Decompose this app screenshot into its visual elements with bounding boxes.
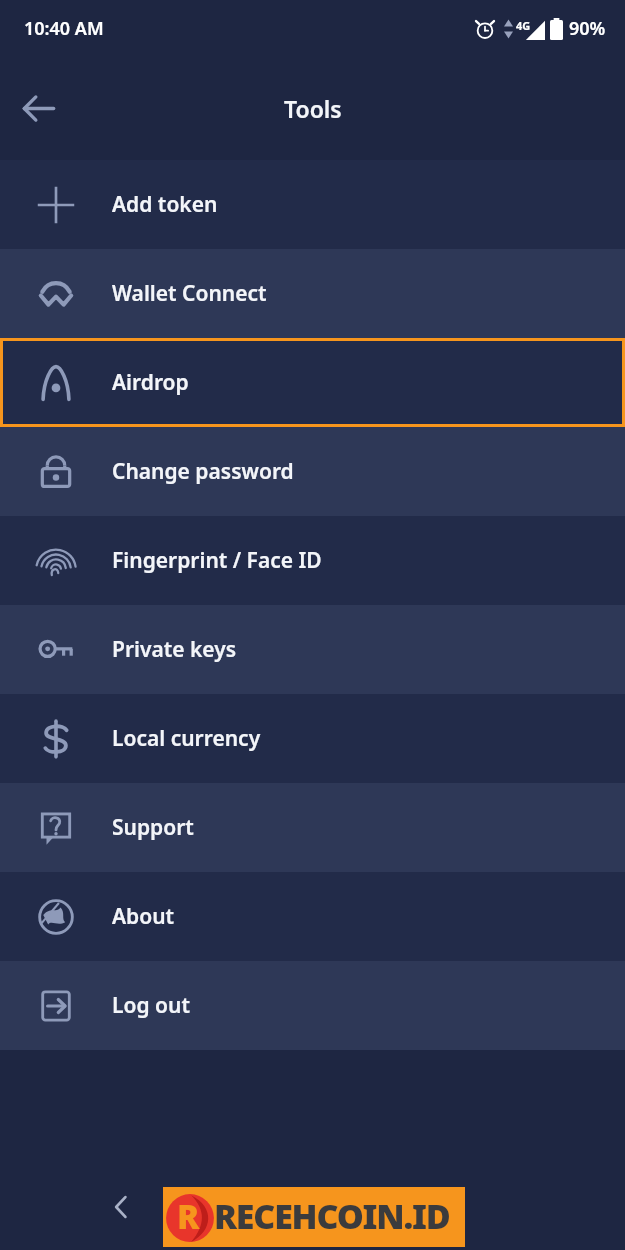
button[interactable]: Fingerprint / Face ID xyxy=(0,516,625,605)
button[interactable]: About xyxy=(0,872,625,961)
staticText: Airdrop xyxy=(112,368,189,397)
staticText: 10:40 AM xyxy=(24,16,104,41)
staticText: Tools xyxy=(284,93,342,124)
staticText: 90% xyxy=(569,16,606,41)
staticText: Fingerprint / Face ID xyxy=(112,546,322,575)
staticText: R xyxy=(177,1194,200,1239)
button[interactable]: Add token xyxy=(0,160,625,249)
staticText: Wallet Connect xyxy=(112,279,267,308)
staticText: RECEHCOIN.ID xyxy=(214,1193,450,1239)
button[interactable]: Log out xyxy=(0,961,625,1050)
staticText: Local currency xyxy=(112,724,261,753)
button[interactable]: Private keys xyxy=(0,605,625,694)
button[interactable]: Change password xyxy=(0,427,625,516)
button[interactable]: Back xyxy=(92,1178,150,1236)
staticText: About xyxy=(112,902,175,931)
button[interactable]: Wallet Connect xyxy=(0,249,625,338)
staticText: Log out xyxy=(112,991,190,1020)
staticText: 4G xyxy=(516,18,531,33)
staticText: Support xyxy=(112,813,194,842)
staticText: Change password xyxy=(112,457,294,486)
button[interactable]: Recehcoin.id xyxy=(163,1187,465,1247)
staticText: Add token xyxy=(112,190,218,219)
button[interactable]: Airdrop xyxy=(0,338,625,427)
button[interactable]: Back xyxy=(6,76,70,140)
staticText: Private keys xyxy=(112,635,237,664)
button[interactable]: Support xyxy=(0,783,625,872)
button[interactable]: Local currency xyxy=(0,694,625,783)
